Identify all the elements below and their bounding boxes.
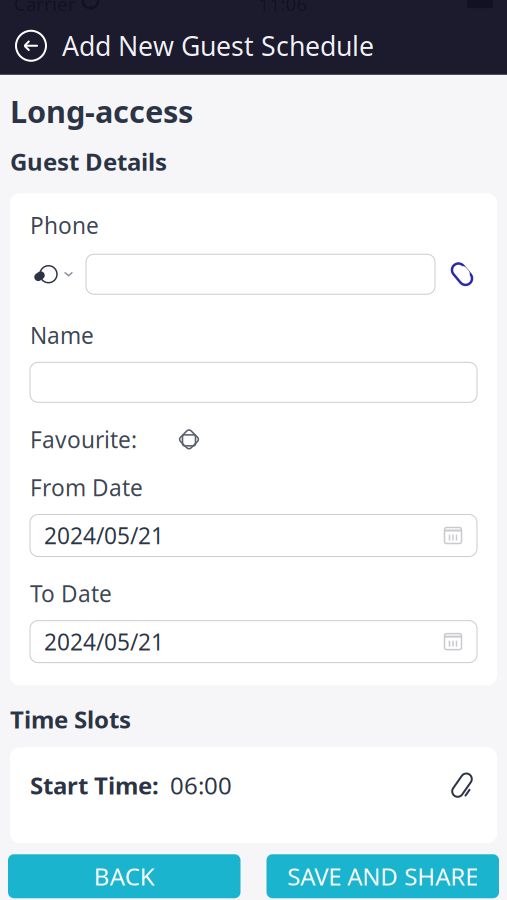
button[interactable]: BACK (8, 854, 240, 898)
button[interactable]: Mark as favourite (178, 428, 200, 450)
staticText: From Date (30, 472, 143, 502)
button[interactable]: Pick contact (447, 259, 477, 289)
staticText: Start Time: (30, 769, 159, 801)
staticText: Add New Guest Schedule (62, 28, 374, 63)
staticText: 2024/05/21 (44, 520, 164, 551)
button[interactable]: Edit start time (447, 770, 477, 800)
staticText: BACK (94, 860, 155, 892)
staticText: 11:06 (258, 0, 307, 16)
staticText: 06:00 (170, 769, 232, 801)
button[interactable]: SAVE AND SHARE (266, 854, 499, 898)
staticText: Long-access (10, 91, 193, 131)
staticText: Time Slots (10, 703, 131, 735)
button[interactable]: Select country code (30, 257, 74, 291)
staticText: Phone (30, 210, 99, 240)
staticText: Name (30, 320, 94, 350)
staticText: To Date (30, 578, 112, 609)
staticText: SAVE AND SHARE (287, 860, 478, 892)
staticText: Favourite: (30, 424, 137, 454)
staticText: 2024/05/21 (44, 627, 164, 657)
button[interactable]: Back (14, 29, 48, 63)
button[interactable]: 2024/05/21 (30, 514, 477, 556)
button[interactable]: 2024/05/21 (30, 621, 477, 663)
staticText: Guest Details (10, 145, 167, 177)
staticText: Carrier (14, 0, 76, 16)
